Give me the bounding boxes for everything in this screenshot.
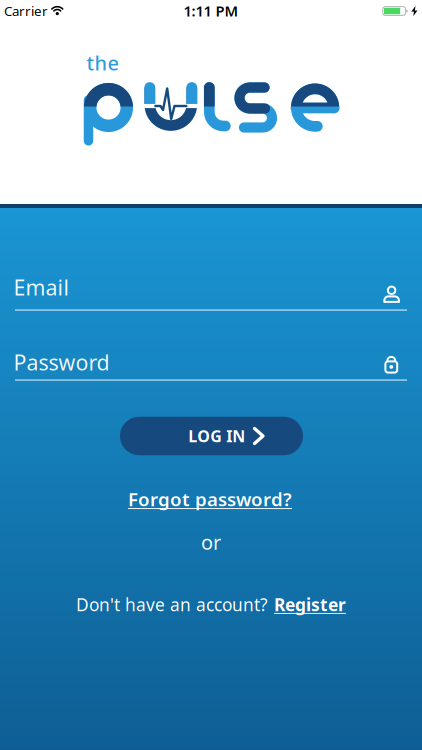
button[interactable]: Register — [274, 593, 346, 616]
button[interactable]: Password — [14, 349, 408, 389]
staticText: LOG IN — [188, 425, 245, 447]
staticText: 1:11 PM — [183, 1, 238, 21]
staticText: Email — [13, 273, 69, 301]
staticText: the — [86, 49, 118, 76]
staticText: Register — [274, 593, 346, 616]
button[interactable]: Email — [14, 274, 408, 314]
button[interactable]: LOG IN — [120, 417, 303, 455]
staticText: Password — [13, 348, 109, 376]
staticText: or — [201, 529, 221, 555]
button[interactable]: Forgot password? — [128, 487, 292, 511]
staticText: Don't have an account? — [76, 593, 268, 616]
staticText: Forgot password? — [128, 487, 292, 511]
staticText: Carrier — [4, 2, 48, 20]
